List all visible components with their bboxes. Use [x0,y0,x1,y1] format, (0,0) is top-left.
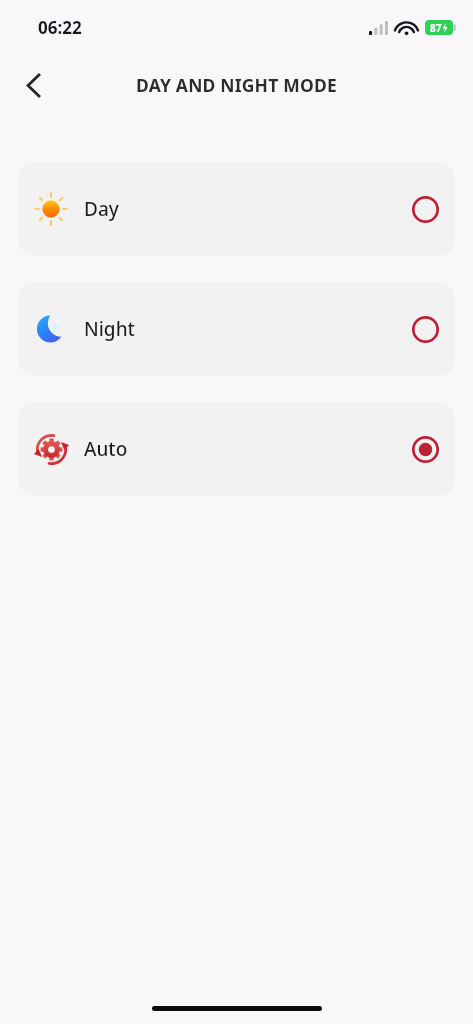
staticText: Auto [84,436,128,462]
staticText: DAY AND NIGHT MODE [0,73,473,97]
button[interactable]: Auto [18,402,455,496]
staticText: 87 [430,21,442,35]
button[interactable]: Day [18,162,455,256]
staticText: 06:22 [38,16,82,39]
staticText: Night [84,316,135,342]
button[interactable]: Back [14,66,52,104]
button[interactable]: Night [18,282,455,376]
staticText: Day [84,196,119,222]
